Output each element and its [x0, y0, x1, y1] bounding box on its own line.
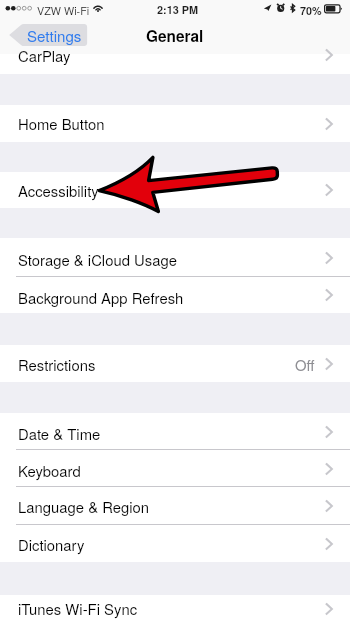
button[interactable]: Language & Region [0, 487, 350, 525]
staticText: CarPlay [18, 45, 71, 65]
button[interactable]: iTunes Wi-Fi Sync [0, 595, 350, 622]
staticText: Restrictions [18, 354, 96, 375]
staticText: VZW Wi-Fi [37, 3, 90, 18]
button[interactable]: Accessibility [0, 172, 350, 208]
staticText: Keyboard [18, 460, 81, 481]
button[interactable]: Date & Time [0, 413, 350, 450]
staticText: Settings [27, 25, 82, 47]
staticText: Accessibility [18, 180, 99, 201]
button[interactable]: Restrictions [0, 345, 350, 382]
staticText: 2:13 PM [157, 2, 199, 18]
staticText: Dictionary [18, 534, 85, 555]
button[interactable]: Keyboard [0, 450, 350, 487]
button[interactable]: CarPlay [0, 54, 350, 74]
staticText: Home Button [18, 113, 105, 134]
button[interactable]: Back to Settings [0, 20, 350, 54]
staticText: Storage & iCloud Usage [18, 249, 177, 270]
button[interactable]: Home Button [0, 105, 350, 142]
staticText: 70% [300, 3, 322, 18]
staticText: General [146, 25, 204, 47]
staticText: Off [295, 354, 315, 375]
staticText: Date & Time [18, 423, 101, 444]
button[interactable]: Dictionary [0, 525, 350, 562]
staticText: Language & Region [18, 496, 150, 517]
staticText: Background App Refresh [18, 287, 184, 308]
button[interactable]: Background App Refresh [0, 277, 350, 313]
staticText: iTunes Wi-Fi Sync [18, 598, 138, 619]
button[interactable]: Storage & iCloud Usage [0, 238, 350, 277]
